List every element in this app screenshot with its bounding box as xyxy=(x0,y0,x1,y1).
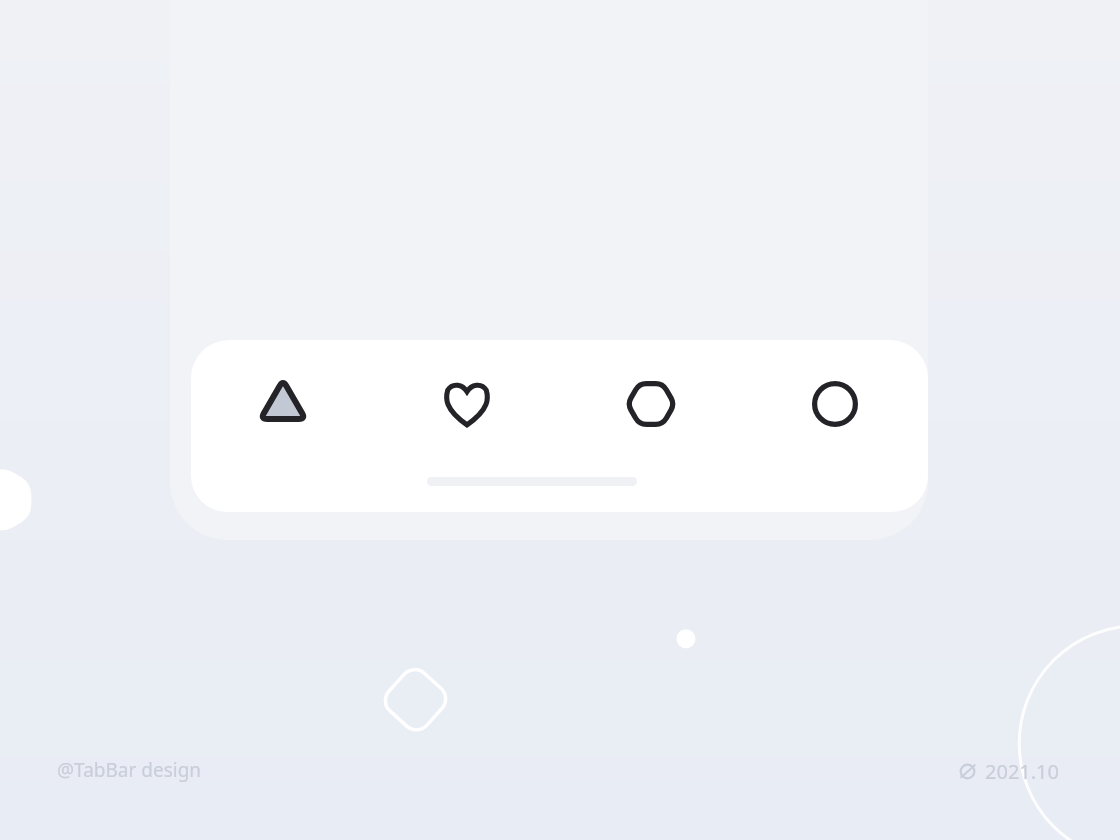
button[interactable]: Profile xyxy=(743,340,927,490)
button[interactable]: Home xyxy=(191,340,375,490)
staticText: 2021.10 xyxy=(985,758,1059,785)
button[interactable]: Discover xyxy=(559,340,743,490)
button[interactable]: Favorites xyxy=(375,340,559,490)
staticText: @TabBar design xyxy=(57,757,202,783)
